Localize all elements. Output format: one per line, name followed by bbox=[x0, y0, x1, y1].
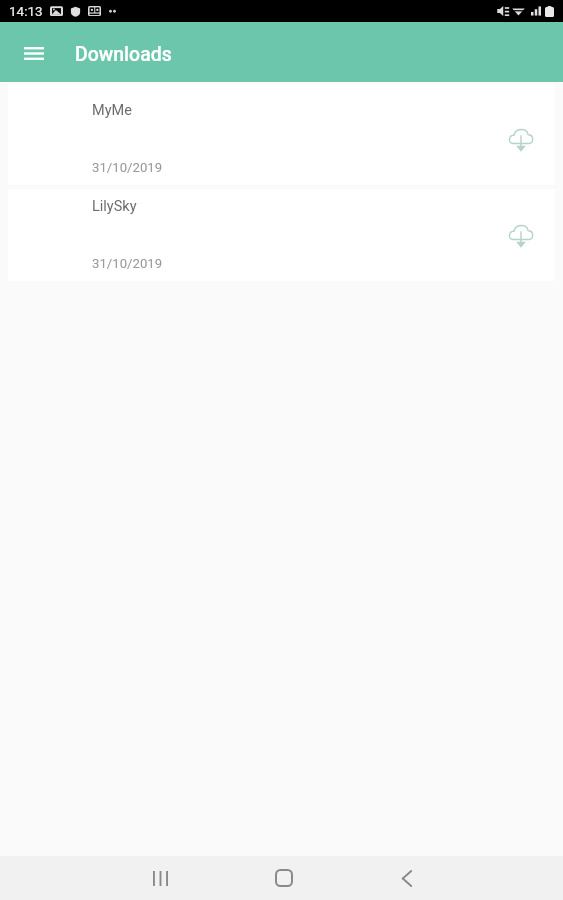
button[interactable]: Recent apps bbox=[98, 856, 222, 900]
button[interactable]: Open navigation menu bbox=[0, 22, 68, 82]
button[interactable]: LilySky bbox=[8, 189, 555, 281]
staticText: MyMe bbox=[92, 102, 132, 119]
staticText: 14:13 bbox=[9, 3, 43, 19]
button[interactable]: MyMe bbox=[8, 84, 555, 185]
button[interactable]: Download bbox=[508, 223, 534, 248]
staticText: 31/10/2019 bbox=[92, 160, 163, 175]
staticText: Downloads bbox=[75, 43, 172, 66]
button[interactable]: Download bbox=[508, 127, 534, 152]
button[interactable]: Home bbox=[222, 856, 345, 900]
staticText: 31/10/2019 bbox=[92, 256, 163, 271]
button[interactable]: Back bbox=[345, 856, 469, 900]
staticText: LilySky bbox=[92, 198, 137, 215]
